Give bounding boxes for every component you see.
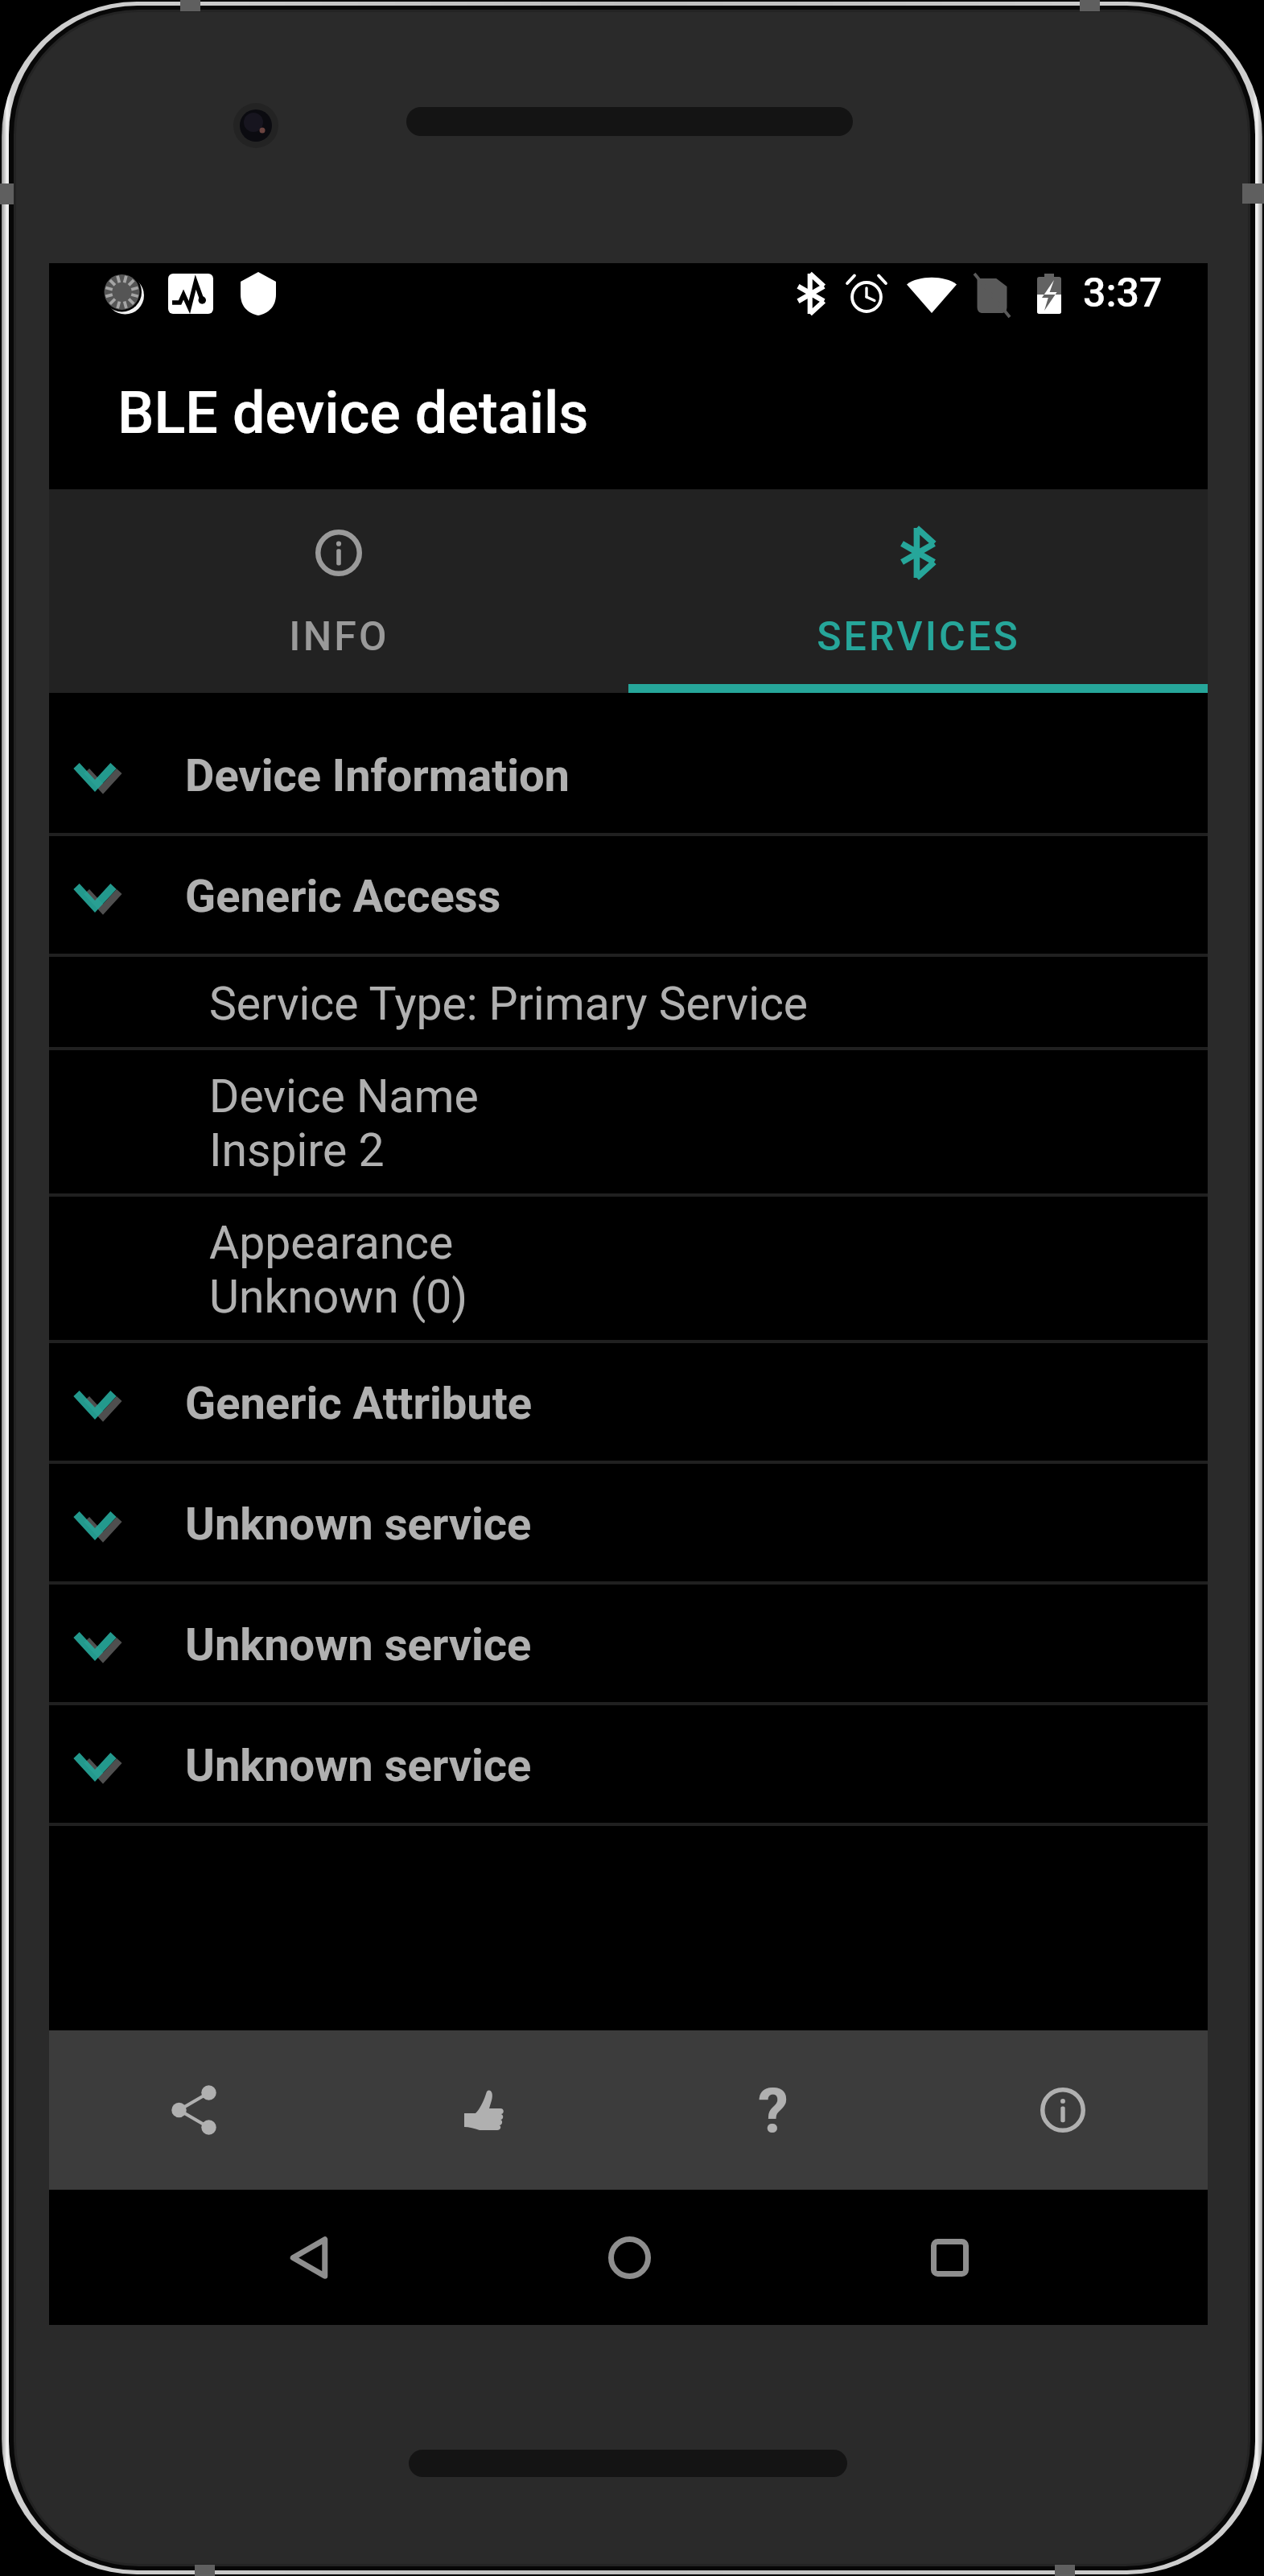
button[interactable]: SERVICES bbox=[628, 489, 1208, 693]
button[interactable]: About bbox=[918, 2030, 1208, 2190]
button[interactable]: Generic Access bbox=[49, 836, 1208, 957]
staticText: Service Type: Primary Service bbox=[209, 977, 809, 1031]
button[interactable]: Device Name bbox=[49, 1050, 1208, 1197]
button[interactable]: Rate this app bbox=[339, 2030, 628, 2190]
staticText: SERVICES bbox=[817, 613, 1020, 661]
button[interactable]: Device Information bbox=[49, 715, 1208, 836]
staticText: ? bbox=[758, 2075, 788, 2146]
staticText: BLE device details bbox=[117, 379, 589, 447]
button[interactable]: Help bbox=[628, 2030, 918, 2190]
staticText: INFO bbox=[289, 613, 389, 661]
button[interactable]: Recent apps bbox=[821, 2190, 1078, 2325]
staticText: Appearance bbox=[209, 1216, 454, 1270]
staticText: 3:37 bbox=[1083, 270, 1163, 317]
staticText: Unknown service bbox=[185, 1498, 532, 1551]
button[interactable]: Generic Attribute bbox=[49, 1343, 1208, 1464]
staticText: Device Name bbox=[209, 1070, 479, 1123]
button[interactable]: Unknown service bbox=[49, 1585, 1208, 1705]
button[interactable]: Share bbox=[49, 2030, 339, 2190]
staticText: Unknown service bbox=[185, 1618, 532, 1671]
staticText: Generic Access bbox=[185, 870, 501, 923]
button[interactable]: Unknown service bbox=[49, 1705, 1208, 1826]
button[interactable]: INFO bbox=[49, 489, 628, 693]
button[interactable]: Service Type: Primary Service bbox=[49, 957, 1208, 1050]
button[interactable]: Appearance bbox=[49, 1197, 1208, 1343]
button[interactable]: Back bbox=[180, 2190, 438, 2325]
button[interactable]: Home bbox=[500, 2190, 758, 2325]
staticText: Unknown service bbox=[185, 1739, 532, 1792]
staticText: Inspire 2 bbox=[209, 1123, 385, 1177]
staticText: Generic Attribute bbox=[185, 1377, 532, 1430]
button[interactable]: Unknown service bbox=[49, 1464, 1208, 1585]
staticText: Device Information bbox=[185, 749, 570, 802]
staticText: Unknown (0) bbox=[209, 1270, 468, 1324]
